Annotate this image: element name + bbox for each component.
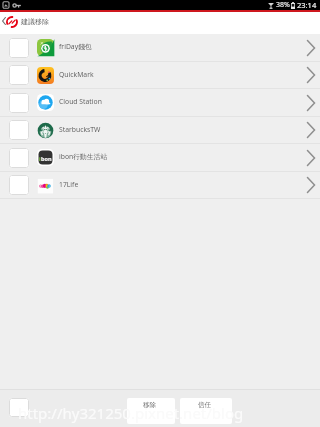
button[interactable]: Select friDay錢包 [0,34,320,61]
staticText: 38% [276,0,290,10]
button[interactable]: Open ibon行動生活站 [302,144,320,171]
button[interactable]: Select QuickMark [9,65,29,85]
button[interactable]: Select ibon行動生活站 [0,144,320,171]
staticText: QuickMark [59,70,94,79]
staticText: friDay錢包 [59,42,92,51]
staticText: 移除 [143,401,156,409]
button[interactable]: 信任 [180,398,232,424]
button[interactable]: Select all [9,398,29,417]
button[interactable]: Open 17Life [302,172,320,198]
staticText: i [39,155,41,162]
staticText: 建議移除 [21,17,49,26]
staticText: 信任 [198,401,211,409]
staticText: http://hy321250.pixnet.net/blog [18,403,244,423]
button[interactable]: 移除 [127,398,175,424]
button[interactable]: Open Cloud Station [302,89,320,116]
staticText: ibon行動生活站 [59,152,108,161]
button[interactable]: Select Cloud Station [0,89,320,116]
button[interactable]: Open friDay錢包 [302,34,320,61]
button[interactable]: Open StarbucksTW [302,117,320,143]
staticText: 23:14 [297,0,317,10]
button[interactable]: Select friDay錢包 [9,38,29,58]
staticText: StarbucksTW [59,125,101,134]
button[interactable]: Select ibon行動生活站 [9,148,29,168]
staticText: 17Life [59,180,79,189]
button[interactable]: Select 17Life [0,172,320,198]
staticText: bon [41,155,52,162]
button[interactable]: Select StarbucksTW [9,120,29,140]
staticText: Cloud Station [59,97,102,106]
button[interactable]: Select QuickMark [0,62,320,88]
button[interactable]: Select Cloud Station [9,93,29,113]
button[interactable]: Open QuickMark [302,62,320,88]
button[interactable]: Select 17Life [9,175,29,195]
button[interactable]: Back [1,12,6,30]
button[interactable]: Select StarbucksTW [0,117,320,143]
